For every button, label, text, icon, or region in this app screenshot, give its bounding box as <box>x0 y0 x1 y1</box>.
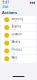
staticText: Web <box>11 56 17 59</box>
button[interactable]: Web <box>1 55 36 63</box>
button[interactable]: Location <box>1 32 36 39</box>
staticText: 7 actions <box>11 52 17 54</box>
staticText: Photos <box>11 48 21 51</box>
staticText: 12 actions <box>11 21 18 23</box>
staticText: Location <box>11 32 22 36</box>
staticText: 9 actions <box>11 44 17 46</box>
staticText: 9:41 <box>2 1 9 4</box>
staticText: Scripting <box>11 17 23 20</box>
staticText: Back <box>3 5 8 9</box>
button[interactable]: Media <box>1 39 36 47</box>
staticText: Actions <box>2 10 17 15</box>
staticText: ▪▪▮ <box>29 1 34 4</box>
button[interactable]: Scripting <box>1 16 36 24</box>
staticText: 6 actions <box>11 36 17 38</box>
staticText: Media <box>11 40 19 44</box>
staticText: 5 actions <box>11 60 17 62</box>
button[interactable]: ‹ <box>0 5 9 9</box>
button[interactable]: Sharing <box>1 24 36 32</box>
staticText: Sharing <box>11 25 21 28</box>
button[interactable]: Photos <box>1 47 36 55</box>
staticText: 8 actions <box>11 29 17 30</box>
